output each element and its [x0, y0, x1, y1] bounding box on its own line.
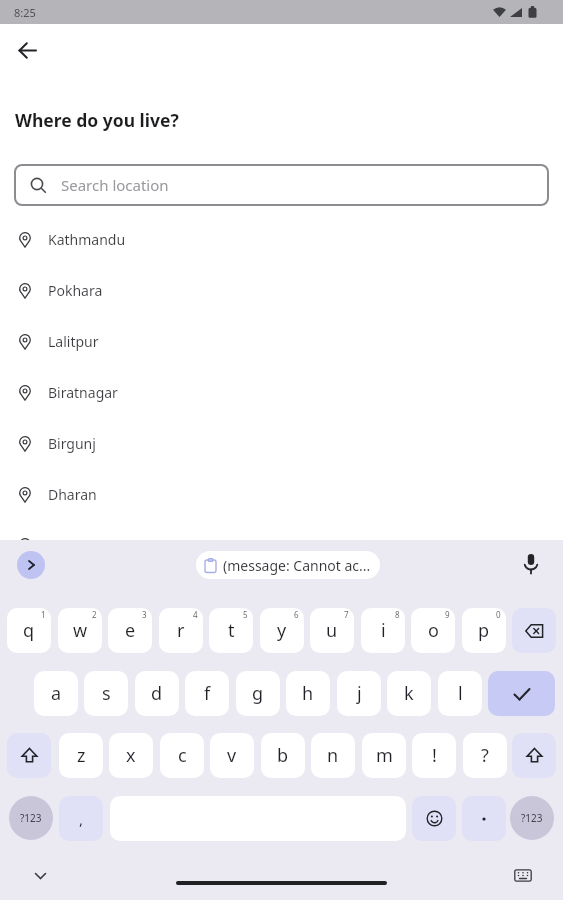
staticText: s: [102, 681, 111, 706]
staticText: t: [228, 618, 235, 643]
button[interactable]: Pokhara: [0, 265, 563, 316]
button[interactable]: ?123: [510, 796, 554, 840]
staticText: w: [73, 618, 88, 643]
button[interactable]: t: [209, 608, 253, 653]
button[interactable]: Search location: [14, 164, 549, 206]
staticText: Birgunj: [48, 434, 96, 453]
button[interactable]: ?123: [9, 796, 53, 840]
button[interactable]: i: [361, 608, 405, 653]
button[interactable]: (message: Cannot ac...: [196, 551, 380, 579]
button[interactable]: [17, 551, 45, 579]
staticText: 9: [445, 609, 450, 620]
button[interactable]: [512, 608, 556, 653]
staticText: k: [404, 681, 414, 706]
staticText: Kathmandu: [48, 230, 126, 249]
button[interactable]: [9, 32, 45, 68]
staticText: Pokhara: [48, 281, 103, 300]
button[interactable]: l: [438, 671, 482, 716]
staticText: q: [23, 618, 35, 643]
staticText: z: [77, 743, 86, 768]
staticText: d: [151, 681, 163, 706]
staticText: e: [125, 618, 136, 643]
staticText: a: [51, 681, 62, 706]
button[interactable]: o: [411, 608, 455, 653]
button[interactable]: Lalitpur: [0, 316, 563, 367]
staticText: ?123: [521, 811, 543, 825]
button[interactable]: f: [185, 671, 229, 716]
staticText: Dharan: [48, 485, 97, 504]
staticText: ,: [79, 809, 84, 829]
staticText: ?: [481, 743, 489, 768]
button[interactable]: b: [261, 733, 305, 778]
staticText: 7: [344, 609, 349, 620]
button[interactable]: n: [311, 733, 355, 778]
button[interactable]: [412, 796, 456, 841]
button[interactable]: !: [412, 733, 456, 778]
staticText: r: [177, 618, 185, 643]
button[interactable]: d: [135, 671, 179, 716]
button[interactable]: w: [58, 608, 102, 653]
staticText: o: [428, 618, 439, 643]
button[interactable]: m: [362, 733, 406, 778]
staticText: Biratnagar: [48, 383, 118, 402]
staticText: y: [277, 618, 287, 643]
button[interactable]: [488, 671, 555, 716]
button[interactable]: g: [236, 671, 280, 716]
staticText: 3: [142, 609, 147, 620]
staticText: ?123: [20, 811, 42, 825]
staticText: Search location: [61, 175, 169, 195]
button[interactable]: v: [210, 733, 254, 778]
button[interactable]: Birgunj: [0, 418, 563, 469]
staticText: Bharatpur: [48, 536, 116, 555]
button[interactable]: a: [34, 671, 78, 716]
staticText: 6: [294, 609, 299, 620]
staticText: 1: [41, 609, 46, 620]
button[interactable]: ,: [59, 796, 103, 841]
button[interactable]: c: [160, 733, 204, 778]
button[interactable]: y: [260, 608, 304, 653]
button[interactable]: r: [159, 608, 203, 653]
staticText: j: [357, 681, 362, 706]
button[interactable]: Kathmandu: [0, 214, 563, 265]
button[interactable]: [7, 733, 51, 778]
staticText: v: [227, 743, 237, 768]
button[interactable]: j: [337, 671, 381, 716]
staticText: (message: Cannot ac...: [223, 556, 371, 575]
button[interactable]: h: [286, 671, 330, 716]
button[interactable]: Dharan: [0, 469, 563, 520]
staticText: l: [458, 681, 463, 706]
button[interactable]: ?: [463, 733, 507, 778]
button[interactable]: q: [7, 608, 51, 653]
staticText: b: [277, 743, 289, 768]
staticText: 2: [92, 609, 97, 620]
button[interactable]: u: [310, 608, 354, 653]
button[interactable]: e: [108, 608, 152, 653]
staticText: Lalitpur: [48, 332, 99, 351]
button[interactable]: s: [84, 671, 128, 716]
staticText: !: [432, 743, 437, 768]
staticText: x: [126, 743, 136, 768]
staticText: Where do you live?: [15, 108, 179, 132]
button[interactable]: [517, 550, 545, 578]
button[interactable]: [462, 796, 506, 841]
button[interactable]: z: [59, 733, 103, 778]
staticText: p: [478, 618, 490, 643]
button[interactable]: Biratnagar: [0, 367, 563, 418]
button[interactable]: x: [109, 733, 153, 778]
button[interactable]: Bharatpur: [0, 520, 563, 571]
button[interactable]: [512, 733, 556, 778]
staticText: u: [326, 618, 338, 643]
staticText: 0: [496, 609, 501, 620]
button[interactable]: [28, 864, 52, 888]
staticText: i: [381, 618, 386, 643]
button[interactable]: [510, 862, 536, 888]
staticText: 4: [193, 609, 198, 620]
staticText: 8:25: [14, 5, 36, 20]
staticText: c: [178, 743, 187, 768]
button[interactable]: p: [462, 608, 506, 653]
button[interactable]: k: [387, 671, 431, 716]
staticText: h: [302, 681, 314, 706]
staticText: 5: [243, 609, 248, 620]
staticText: n: [327, 743, 339, 768]
